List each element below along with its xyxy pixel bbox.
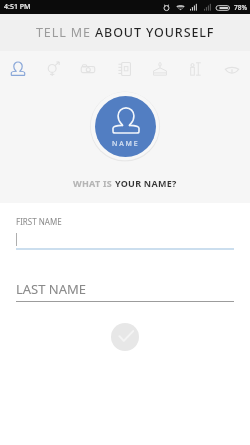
staticText: 4:51 PM (4, 2, 31, 12)
button[interactable]: Next (111, 323, 139, 351)
staticText: LAST NAME (16, 280, 87, 298)
staticText: YOUR NAME? (115, 177, 177, 189)
staticText: TELL ME (36, 24, 95, 41)
staticText: ABOUT YOURSELF (95, 24, 215, 41)
button[interactable]: Photo (70, 51, 106, 87)
staticText: NAME (112, 139, 140, 149)
button[interactable]: Gender (35, 51, 70, 87)
button[interactable]: Height (178, 51, 214, 87)
button[interactable]: Name (0, 51, 35, 87)
button[interactable]: Birthday (142, 51, 178, 87)
button[interactable]: Profile photo (95, 96, 156, 157)
staticText: 78% (234, 3, 247, 12)
button[interactable]: Contact (106, 51, 142, 87)
staticText: WHAT IS (73, 177, 115, 189)
staticText: FIRST NAME (16, 216, 62, 227)
